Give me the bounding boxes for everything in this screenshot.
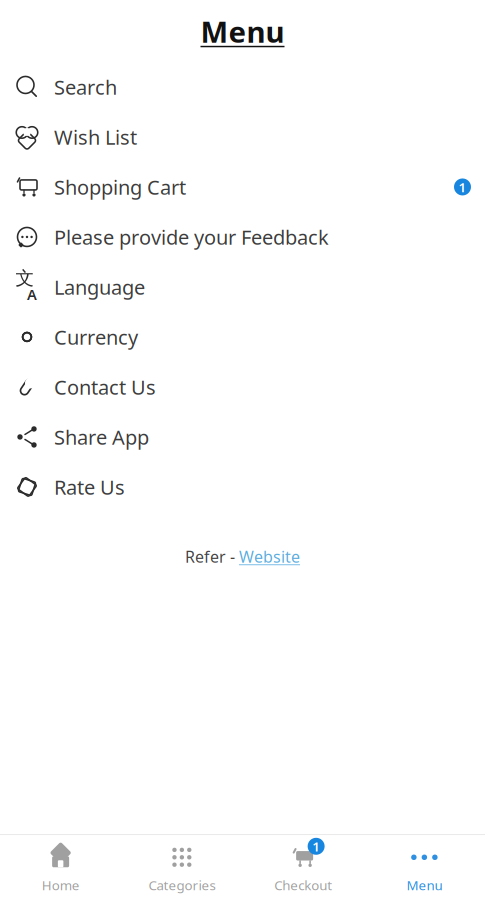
staticText: 1 xyxy=(312,837,320,855)
staticText: Please provide your Feedback xyxy=(54,224,329,250)
staticText: Shopping Cart xyxy=(54,174,186,200)
staticText: 文 xyxy=(15,267,34,290)
button[interactable]: 1 xyxy=(242,835,364,900)
staticText: Menu xyxy=(406,876,442,894)
staticText: 1 xyxy=(458,178,466,196)
staticText: Rate Us xyxy=(54,474,125,500)
staticText: Checkout xyxy=(274,876,332,894)
staticText: Contact Us xyxy=(54,374,156,400)
staticText: Home xyxy=(42,876,80,894)
staticText: Search xyxy=(54,74,117,100)
staticText: Wish List xyxy=(54,124,137,150)
button[interactable]: Shopping Cart xyxy=(0,162,485,212)
staticText: A xyxy=(27,285,37,304)
button[interactable]: Menu xyxy=(364,835,485,900)
staticText: Language xyxy=(54,274,145,300)
staticText: Share App xyxy=(54,424,149,450)
button[interactable]: Website xyxy=(239,546,300,567)
button[interactable]: Wish List xyxy=(0,112,485,162)
staticText: Menu xyxy=(200,12,284,51)
staticText: Categories xyxy=(148,876,215,894)
staticText: Refer - xyxy=(185,546,239,567)
button[interactable]: Rate Us xyxy=(0,462,485,512)
button[interactable]: Currency xyxy=(0,312,485,362)
button[interactable]: Contact Us xyxy=(0,362,485,412)
button[interactable]: Home xyxy=(0,835,121,900)
staticText: Currency xyxy=(54,324,138,350)
button[interactable]: Share App xyxy=(0,412,485,462)
button[interactable]: Search xyxy=(0,62,485,112)
button[interactable]: 文 xyxy=(0,262,485,312)
button[interactable]: Please provide your Feedback xyxy=(0,212,485,262)
staticText: Website xyxy=(239,546,300,567)
button[interactable]: Categories xyxy=(121,835,242,900)
